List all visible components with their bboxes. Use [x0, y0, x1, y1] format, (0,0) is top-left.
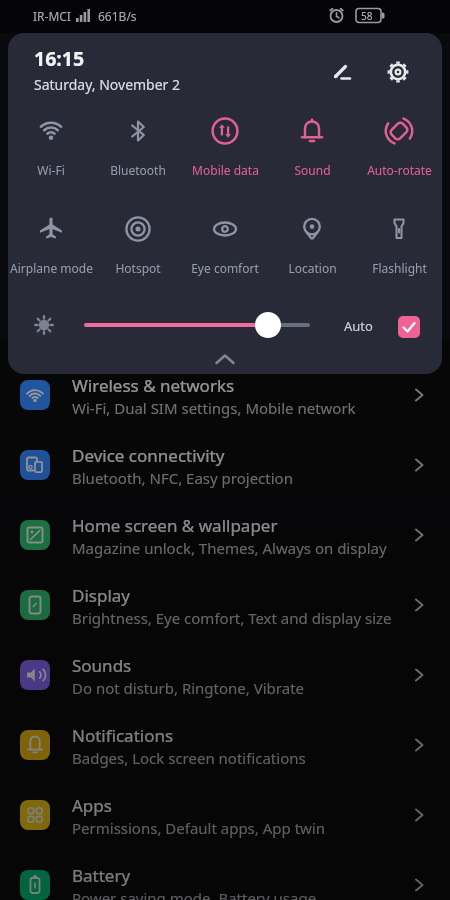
staticText: Mobile data: [192, 162, 259, 178]
staticText: 661B/s: [98, 8, 137, 24]
staticText: 16:15: [34, 45, 85, 72]
staticText: Location: [288, 260, 337, 276]
button[interactable]: Wireless & networks: [0, 360, 450, 430]
staticText: Apps: [72, 794, 112, 817]
button[interactable]: Mobile data: [182, 116, 268, 178]
staticText: Sound: [294, 162, 331, 178]
staticText: Battery: [72, 864, 131, 887]
button[interactable]: Sound: [269, 116, 355, 178]
button[interactable]: Display: [0, 570, 450, 640]
staticText: Wi-Fi, Dual SIM settings, Mobile network: [72, 398, 356, 418]
staticText: Auto-rotate: [367, 162, 432, 178]
button[interactable]: [78, 311, 324, 339]
button[interactable]: [205, 348, 245, 370]
staticText: Saturday, November 2: [34, 75, 181, 94]
staticText: Home screen & wallpaper: [72, 514, 278, 537]
button[interactable]: Hotspot: [95, 214, 181, 276]
button[interactable]: Home screen & wallpaper: [0, 500, 450, 570]
staticText: Flashlight: [372, 260, 427, 276]
staticText: Sounds: [72, 654, 132, 677]
button[interactable]: Apps: [0, 780, 450, 850]
staticText: Notifications: [72, 724, 174, 747]
staticText: Display: [72, 584, 130, 607]
staticText: Power saving mode, Battery usage: [72, 888, 317, 900]
button[interactable]: Eye comfort: [182, 214, 268, 276]
staticText: Magazine unlock, Themes, Always on displ…: [72, 538, 387, 558]
button[interactable]: Sounds: [0, 640, 450, 710]
button[interactable]: [326, 56, 358, 88]
button[interactable]: Notifications: [0, 710, 450, 780]
button[interactable]: Bluetooth: [95, 116, 181, 178]
staticText: Do not disturb, Ringtone, Vibrate: [72, 678, 305, 698]
staticText: IR-MCI: [33, 8, 71, 24]
staticText: Auto: [344, 317, 373, 335]
staticText: Badges, Lock screen notifications: [72, 748, 306, 768]
button[interactable]: [382, 56, 414, 88]
button[interactable]: Airplane mode: [8, 214, 94, 276]
staticText: Bluetooth, NFC, Easy projection: [72, 468, 293, 488]
button[interactable]: Device connectivity: [0, 430, 450, 500]
staticText: Wireless & networks: [72, 374, 235, 397]
button[interactable]: Wi-Fi: [8, 116, 94, 178]
staticText: Eye comfort: [191, 260, 259, 276]
button[interactable]: Auto-rotate: [356, 116, 442, 178]
staticText: Permissions, Default apps, App twin: [72, 818, 326, 838]
staticText: Bluetooth: [110, 162, 166, 178]
button[interactable]: Location: [269, 214, 355, 276]
staticText: Wi-Fi: [37, 162, 65, 178]
staticText: 58: [361, 9, 373, 23]
staticText: Hotspot: [115, 260, 161, 276]
staticText: Device connectivity: [72, 444, 225, 467]
staticText: Airplane mode: [10, 260, 93, 276]
button[interactable]: Flashlight: [356, 214, 442, 276]
button[interactable]: [398, 316, 420, 338]
staticText: Brightness, Eye comfort, Text and displa…: [72, 608, 392, 628]
button[interactable]: Battery: [0, 850, 450, 900]
